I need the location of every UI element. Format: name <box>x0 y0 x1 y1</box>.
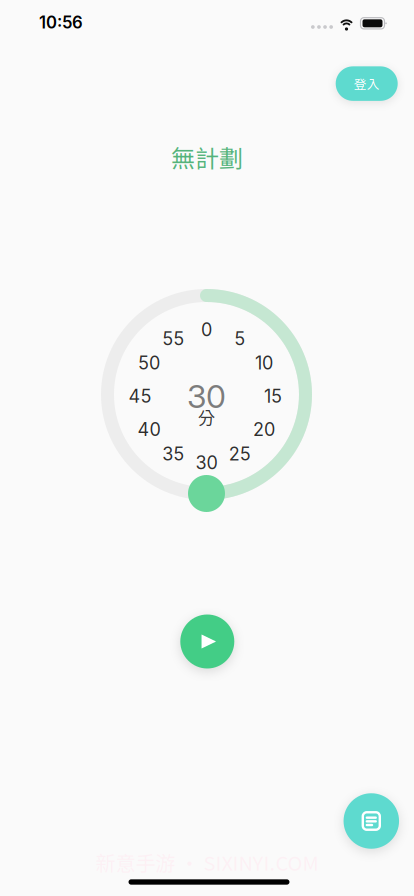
staticText: 30 <box>187 377 226 416</box>
staticText: 0 <box>201 319 212 341</box>
staticText: 10:56 <box>39 12 83 33</box>
staticText: 新意手游 · SIXINYI.COM <box>95 847 318 876</box>
staticText: 15 <box>264 385 282 407</box>
button[interactable]: 登入 <box>336 66 398 101</box>
button[interactable]: Notes <box>344 793 399 849</box>
staticText: 40 <box>137 419 160 440</box>
staticText: 10 <box>255 352 273 374</box>
staticText: 25 <box>229 443 251 465</box>
staticText: 30 <box>195 452 217 474</box>
staticText: 55 <box>162 328 184 350</box>
staticText: 20 <box>253 419 275 440</box>
staticText: 5 <box>234 328 245 350</box>
button[interactable]: Start timer <box>180 614 234 668</box>
staticText: 無計劃 <box>171 140 243 174</box>
staticText: 50 <box>138 352 160 374</box>
staticText: 分 <box>198 405 215 430</box>
staticText: 登入 <box>354 74 380 93</box>
staticText: 45 <box>128 385 151 407</box>
staticText: 35 <box>162 443 184 465</box>
